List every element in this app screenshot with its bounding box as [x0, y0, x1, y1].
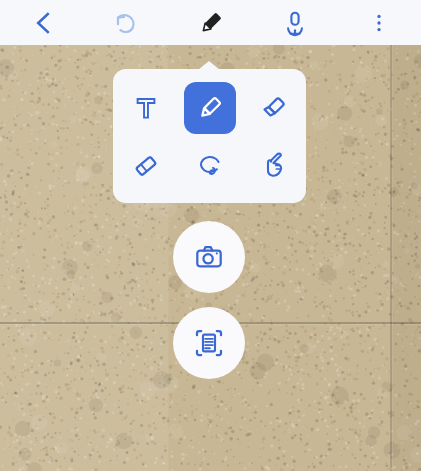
button[interactable]: Take photo [173, 221, 245, 293]
button[interactable]: Back [0, 0, 85, 45]
button[interactable]: Voice input [253, 0, 337, 45]
button[interactable]: Scan document [173, 307, 245, 379]
button[interactable]: Pen tool [169, 0, 253, 45]
button[interactable]: Touch select [248, 140, 300, 192]
button[interactable]: Undo [85, 0, 169, 45]
button[interactable]: Highlighter [248, 82, 300, 134]
button[interactable]: Lasso select [184, 140, 236, 192]
button[interactable]: Text tool [120, 82, 172, 134]
button[interactable]: More options [337, 0, 421, 45]
button[interactable]: Eraser [120, 140, 172, 192]
button[interactable]: Pen [184, 82, 236, 134]
